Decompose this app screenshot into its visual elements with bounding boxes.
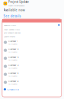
staticText: See details [3,14,20,18]
staticText: Learn more [4,35,15,38]
staticText: 12 items [8,67,17,69]
staticText: Your saved lists [4,28,20,31]
staticText: 12 items [8,43,17,45]
staticText: team workspace [8,4,24,7]
staticText: 12 items [8,59,17,61]
staticText: Number 1 [8,39,18,43]
staticText: Number 3 [8,55,18,59]
staticText: Number 2 [8,47,18,51]
staticText: Search lists [4,23,16,27]
staticText: Number 5 [8,71,18,75]
staticText: Available now [3,8,24,12]
staticText: Create list [7,88,19,91]
staticText: 12 items [8,75,17,77]
staticText: are shown below [4,31,21,34]
staticText: Project Update [8,0,29,4]
staticText: Number 6 [8,79,18,83]
staticText: 12 items [8,83,17,85]
staticText: 12 items [8,51,17,53]
staticText: Number 4 [8,63,18,67]
